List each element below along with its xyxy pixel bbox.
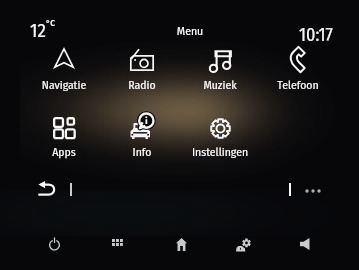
staticText: Instellingen — [175, 145, 265, 270]
staticText: 12 — [30, 19, 46, 42]
staticText: Radio — [97, 78, 187, 270]
button[interactable]: Instellingen — [183, 111, 257, 176]
button[interactable]: Back — [38, 181, 55, 196]
button[interactable]: Navigatie — [27, 42, 101, 104]
button[interactable]: Volume — [290, 231, 320, 257]
button[interactable]: Info — [105, 108, 179, 175]
staticText: °C — [46, 18, 55, 29]
staticText: Navigatie — [19, 78, 109, 270]
button[interactable]: Radio — [105, 43, 179, 107]
staticText: Apps — [19, 145, 109, 270]
button[interactable]: Vehicle settings — [228, 232, 258, 258]
staticText: Info — [97, 145, 187, 270]
staticText: Menu — [145, 24, 235, 270]
staticText: 10:17 — [299, 24, 333, 46]
button[interactable]: Apps — [27, 111, 101, 174]
button[interactable]: More options — [305, 188, 321, 194]
button[interactable]: Telefoon — [261, 43, 335, 108]
button[interactable]: All apps — [103, 230, 133, 256]
staticText: Telefoon — [253, 78, 343, 270]
staticText: Muziek — [175, 78, 265, 270]
button[interactable]: Power — [39, 230, 69, 256]
button[interactable]: Home — [166, 231, 196, 257]
button[interactable]: Muziek — [183, 44, 257, 109]
